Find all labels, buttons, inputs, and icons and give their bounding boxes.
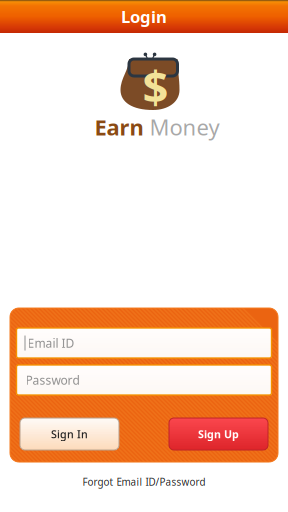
staticText: $ <box>142 56 168 116</box>
button[interactable]: Forgot Email ID/Password <box>44 473 244 491</box>
staticText: Email ID <box>27 335 74 351</box>
staticText: Earn <box>94 112 143 142</box>
staticText: Password <box>25 372 79 388</box>
button[interactable]: Sign Up <box>169 418 268 450</box>
staticText: Forgot Email ID/Password <box>82 475 205 489</box>
staticText: Sign Up <box>198 427 239 441</box>
staticText: Login <box>121 5 167 28</box>
staticText: Sign In <box>51 427 88 441</box>
staticText: Money <box>143 112 219 142</box>
button[interactable]: Sign In <box>20 418 119 450</box>
button[interactable]: Login <box>84 0 204 33</box>
